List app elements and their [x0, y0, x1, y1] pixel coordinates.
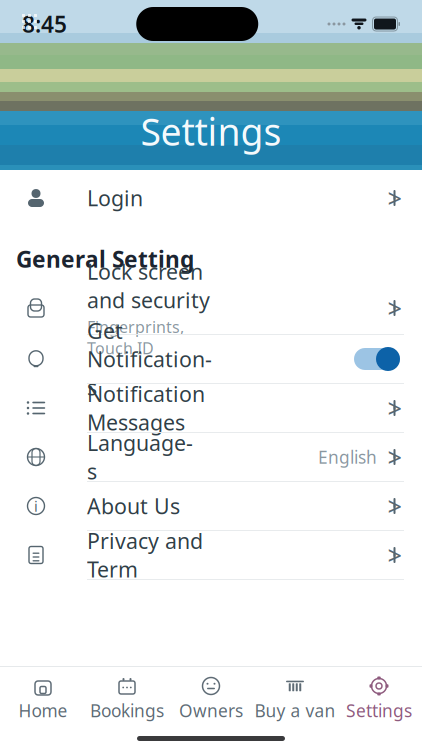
staticText: > — [387, 181, 401, 215]
staticText: General Setting — [16, 244, 194, 274]
button[interactable]: i — [0, 482, 422, 531]
button[interactable]: Notification Messages — [0, 384, 422, 433]
staticText: > — [387, 391, 401, 425]
button[interactable]: Lock screen and security — [0, 282, 422, 335]
staticText: Settings — [346, 699, 412, 722]
staticText: Notification Messages — [87, 380, 205, 436]
button[interactable]: Bookings — [85, 677, 169, 721]
button[interactable]: Login — [0, 170, 422, 226]
staticText: > — [387, 489, 401, 523]
button[interactable]: Languages — [0, 433, 422, 482]
staticText: > — [387, 440, 401, 474]
button[interactable]: Privacy and Term — [0, 531, 422, 580]
staticText: Login — [87, 184, 143, 212]
button[interactable]: Home — [1, 677, 85, 721]
staticText: Home — [18, 699, 67, 722]
button[interactable]: Get Notifications — [0, 335, 422, 384]
staticText: Get Notifications — [87, 316, 212, 401]
staticText: About Us — [87, 492, 180, 520]
staticText: > — [387, 291, 401, 325]
staticText: Owners — [179, 699, 243, 722]
button[interactable]: Buy a van — [253, 677, 337, 721]
staticText: Privacy and Term — [87, 527, 203, 583]
staticText: Languages — [87, 429, 193, 485]
staticText: Settings — [140, 106, 281, 156]
button[interactable]: Owners — [169, 677, 253, 721]
staticText: Buy a van — [254, 699, 335, 722]
staticText: Fingerprints, Touch ID — [87, 316, 184, 359]
button[interactable]: Settings — [337, 677, 421, 721]
staticText: English — [318, 445, 377, 468]
staticText: 8:45 — [22, 9, 67, 39]
staticText: Bookings — [90, 699, 164, 722]
staticText: > — [387, 538, 401, 572]
staticText: Lock screen and security — [87, 257, 210, 314]
staticText: i — [34, 496, 38, 516]
